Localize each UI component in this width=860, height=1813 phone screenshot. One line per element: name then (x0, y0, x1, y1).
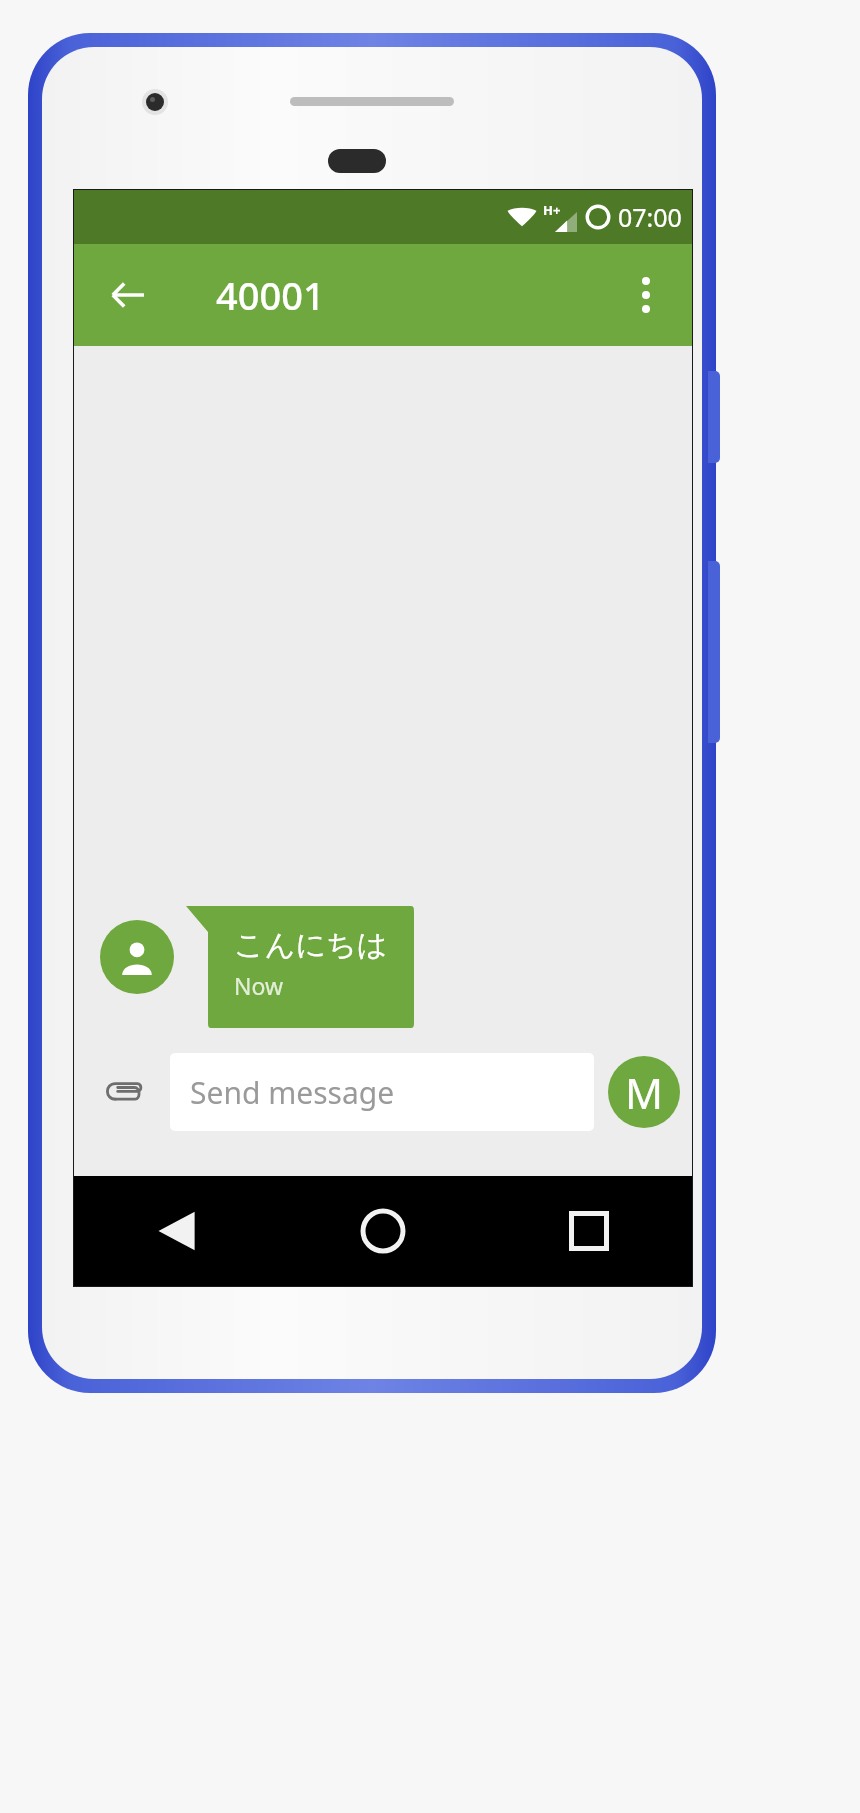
button[interactable]: Recent apps (486, 1176, 692, 1286)
button[interactable]: Home (280, 1176, 486, 1286)
button[interactable]: Contact avatar (100, 920, 174, 994)
button[interactable]: Back (74, 1176, 280, 1286)
button[interactable]: More options (618, 267, 674, 323)
button[interactable]: Attach file (92, 1061, 154, 1123)
button[interactable]: Send message (170, 1053, 594, 1131)
staticText: M (625, 1064, 664, 1121)
button[interactable]: Back (100, 267, 156, 323)
staticText: H+ (543, 201, 561, 219)
staticText: Send message (190, 1072, 395, 1113)
button[interactable]: Send (608, 1056, 680, 1128)
staticText: 40001 (216, 269, 325, 321)
staticText: こんにちは (234, 926, 388, 964)
staticText: 07:00 (618, 200, 682, 234)
staticText: Now (234, 970, 284, 1001)
button[interactable]: こんにちは (234, 926, 400, 1001)
